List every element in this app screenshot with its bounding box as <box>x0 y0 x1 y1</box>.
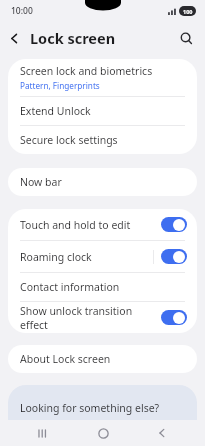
button[interactable]: Search <box>173 25 199 51</box>
staticText: Contact information <box>20 280 120 294</box>
staticText: About Lock screen <box>20 352 111 366</box>
staticText: Show unlock transition effect <box>20 304 161 332</box>
button[interactable]: Screen lock and biometrics <box>8 59 197 96</box>
button[interactable]: Toggle <box>161 217 187 232</box>
button[interactable]: Secure lock settings <box>8 126 197 154</box>
button[interactable]: Home <box>86 421 120 445</box>
button[interactable]: Now bar <box>8 168 197 196</box>
button[interactable]: About Lock screen <box>8 345 197 373</box>
staticText: 10:00 <box>11 5 33 17</box>
button[interactable]: Toggle <box>161 310 187 325</box>
button[interactable]: Back <box>145 421 179 445</box>
staticText: Secure lock settings <box>20 133 118 147</box>
button[interactable]: Contact information <box>8 273 197 301</box>
button[interactable]: Touch and hold to edit <box>8 209 197 240</box>
staticText: Roaming clock <box>20 250 153 264</box>
staticText: Now bar <box>20 175 62 189</box>
staticText: Pattern, Fingerprints <box>20 80 100 91</box>
button[interactable]: Show unlock transition effect <box>8 302 197 333</box>
button[interactable]: Roaming clock <box>8 241 197 272</box>
staticText: Touch and hold to edit <box>20 218 161 232</box>
button[interactable]: Recents <box>26 421 60 445</box>
button[interactable]: Back <box>0 24 28 52</box>
staticText: Extend Unlock <box>20 104 91 118</box>
button[interactable]: Looking for something else? <box>8 385 197 446</box>
staticText: Lock screen <box>30 28 116 48</box>
button[interactable]: Extend Unlock <box>8 97 197 125</box>
staticText: 100 <box>183 8 193 15</box>
staticText: Screen lock and biometrics <box>20 64 153 78</box>
button[interactable]: Toggle <box>161 249 187 264</box>
staticText: Edit Lock screen <box>20 424 100 438</box>
staticText: Looking for something else? <box>20 401 160 415</box>
